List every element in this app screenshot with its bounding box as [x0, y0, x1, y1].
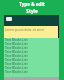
button[interactable]: Text Blocks List: [4, 54, 59, 58]
button[interactable]: Text Blocks List: [4, 62, 59, 66]
staticText: Text Blocks List: [5, 66, 28, 70]
button[interactable]: Text Blocks List: [4, 66, 59, 70]
staticText: Type & edit: [19, 1, 45, 7]
button[interactable]: Text Blocks List: [4, 70, 59, 74]
staticText: Text Blocks List: [5, 50, 28, 54]
staticText: Lorem ipsum dolor sit amet: [5, 28, 44, 32]
button[interactable]: Text Blocks List: [4, 50, 59, 54]
button[interactable]: Text Blocks List: [4, 38, 59, 42]
button[interactable]: [6, 17, 12, 21]
button[interactable]: Text Blocks List: [4, 46, 59, 50]
staticText: Text Blocks List: [5, 70, 28, 74]
staticText: Text Blocks List: [5, 62, 28, 66]
staticText: Text Blocks List: [5, 54, 28, 58]
staticText: Text Blocks List: [5, 38, 28, 42]
staticText: Text Blocks List: [5, 46, 28, 50]
staticText: Style: [26, 8, 38, 14]
button[interactable]: Text Blocks List: [4, 58, 59, 62]
staticText: Text Blocks List: [5, 58, 28, 62]
staticText: Text Blocks List: [5, 42, 28, 46]
button[interactable]: Text Blocks List: [4, 42, 59, 46]
button[interactable]: Type & edit: [0, 0, 64, 15]
